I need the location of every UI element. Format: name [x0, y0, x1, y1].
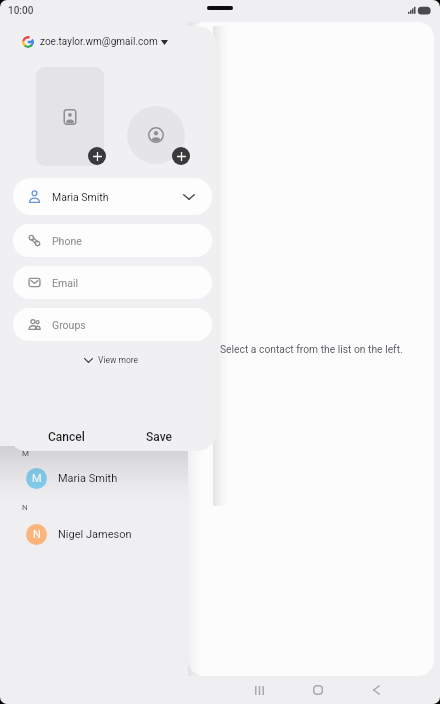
button[interactable]: M	[0, 456, 188, 500]
staticText: N	[33, 528, 41, 541]
staticText: N	[22, 503, 28, 512]
staticText: 10:00	[8, 5, 34, 17]
button[interactable]: Groups	[13, 308, 212, 341]
staticText: Cancel	[48, 430, 85, 444]
button[interactable]: Recents	[230, 676, 288, 704]
button[interactable]: Back	[347, 676, 405, 704]
button[interactable]: Add	[172, 147, 190, 165]
button[interactable]: Cancel	[32, 423, 100, 451]
staticText: M	[22, 449, 29, 458]
button[interactable]: Home	[289, 676, 347, 704]
button[interactable]: Save	[131, 423, 187, 451]
staticText: Groups	[52, 319, 86, 331]
button[interactable]: Add	[88, 147, 106, 165]
staticText: zoe.taylor.wm@gmail.com	[40, 36, 158, 48]
button[interactable]: Add photo	[36, 67, 104, 166]
button[interactable]: Maria Smith	[13, 178, 212, 215]
staticText: Save	[146, 430, 172, 444]
staticText: Select a contact from the list on the le…	[220, 343, 403, 355]
staticText: Maria Smith	[52, 191, 109, 203]
staticText: Phone	[52, 235, 82, 247]
button[interactable]: Add avatar	[127, 106, 185, 164]
button[interactable]: zoe.taylor.wm@gmail.com	[15, 30, 168, 54]
button[interactable]: View more	[77, 348, 149, 372]
staticText: View more	[98, 355, 139, 365]
staticText: Maria Smith	[58, 472, 118, 485]
button[interactable]: N	[0, 512, 188, 556]
staticText: Nigel Jameson	[58, 528, 132, 541]
staticText: M	[32, 472, 42, 485]
button[interactable]: Phone	[13, 224, 212, 257]
button[interactable]: Email	[13, 266, 212, 299]
staticText: Email	[52, 277, 78, 289]
